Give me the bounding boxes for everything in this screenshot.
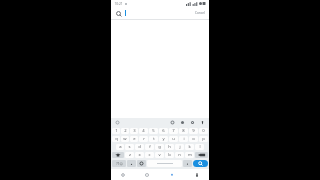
staticText: c [148,152,151,158]
button[interactable]: y [159,136,168,142]
staticText: ?1☺ [116,162,123,166]
button[interactable]: t [149,136,158,142]
staticText: i [183,136,185,142]
button[interactable]: 0 [199,128,208,134]
button[interactable]: 2 [121,128,129,134]
button[interactable]: q [112,136,120,142]
staticText: 6 [162,128,165,134]
staticText: f [149,144,151,150]
staticText: u [172,136,175,142]
button[interactable]: p [199,136,208,142]
button[interactable]: j [175,144,184,150]
button[interactable]: s [125,144,134,150]
staticText: l [199,144,201,150]
button[interactable]: 6 [159,128,168,134]
staticText: 3 [133,128,136,134]
staticText: a [119,144,122,150]
staticText: e [133,136,136,142]
button[interactable]: i [179,136,188,142]
button[interactable]: k [185,144,194,150]
button[interactable]: a [116,144,124,150]
button[interactable]: u [169,136,178,142]
staticText: 0 [202,128,205,134]
staticText: t [153,136,155,142]
button[interactable]: z [125,152,134,158]
staticText: j [179,144,181,150]
staticText: z [129,152,131,158]
button[interactable]: n [175,152,184,158]
button[interactable]: 7 [169,128,178,134]
staticText: d [138,144,141,150]
button[interactable]: f [145,144,154,150]
button[interactable]: Cancel [194,10,206,16]
button[interactable]: Notifications [159,169,184,180]
staticText: 8 [182,128,185,134]
button[interactable]: Voice input [199,119,206,126]
button[interactable]: o [189,136,198,142]
button[interactable]: Shift [112,152,124,158]
staticText: 7 [172,128,175,134]
button[interactable]: h [165,144,174,150]
button[interactable]: r [139,136,148,142]
staticText: Cancel [195,11,205,15]
button[interactable]: Space [147,160,182,167]
staticText: 4 [142,128,145,134]
staticText: v [158,152,161,158]
staticText: b [168,152,171,158]
staticText: 9 [192,128,195,134]
staticText: h [168,144,171,150]
button[interactable]: 5 [149,128,158,134]
button[interactable]: 9 [189,128,198,134]
button[interactable]: w [121,136,129,142]
staticText: g [158,144,161,150]
staticText: n [178,152,181,158]
staticText: o [192,136,195,142]
staticText: 2 [124,128,127,134]
button[interactable]: d [135,144,144,150]
button[interactable]: Search [193,160,208,167]
button[interactable]: ?1☺ [112,160,126,167]
button[interactable]: Backspace [195,152,208,158]
button[interactable]: v [155,152,164,158]
staticText: m [188,152,192,158]
button[interactable]: m [185,152,194,158]
staticText: p [202,136,205,142]
button[interactable]: Stickers [169,119,176,126]
button[interactable]: Home [111,169,135,180]
button[interactable]: Comma [127,160,136,167]
button[interactable]: 8 [179,128,188,134]
button[interactable]: x [135,152,144,158]
button[interactable]: Settings [189,119,196,126]
staticText: x [138,152,141,158]
button[interactable]: 1 [112,128,120,134]
button[interactable]: g [155,144,164,150]
button[interactable]: Google [114,119,121,126]
button[interactable]: Discover [135,169,159,180]
staticText: 10:21 [114,2,123,6]
staticText: r [143,136,145,142]
button[interactable]: b [165,152,174,158]
button[interactable]: 3 [130,128,138,134]
button[interactable]: Emoji [137,160,146,167]
staticText: w [123,136,127,142]
staticText: 5 [152,128,155,134]
button[interactable]: c [145,152,154,158]
staticText: k [188,144,191,150]
staticText: 1 [115,128,118,134]
staticText: y [162,136,165,142]
staticText: q [115,136,118,142]
button[interactable]: Period [183,160,192,167]
staticText: s [128,144,131,150]
button[interactable]: e [130,136,138,142]
button[interactable]: GIF [179,119,186,126]
button[interactable]: 4 [139,128,148,134]
button[interactable]: l [195,144,204,150]
button[interactable]: Profile [184,169,209,180]
button[interactable]: Search [114,9,123,18]
